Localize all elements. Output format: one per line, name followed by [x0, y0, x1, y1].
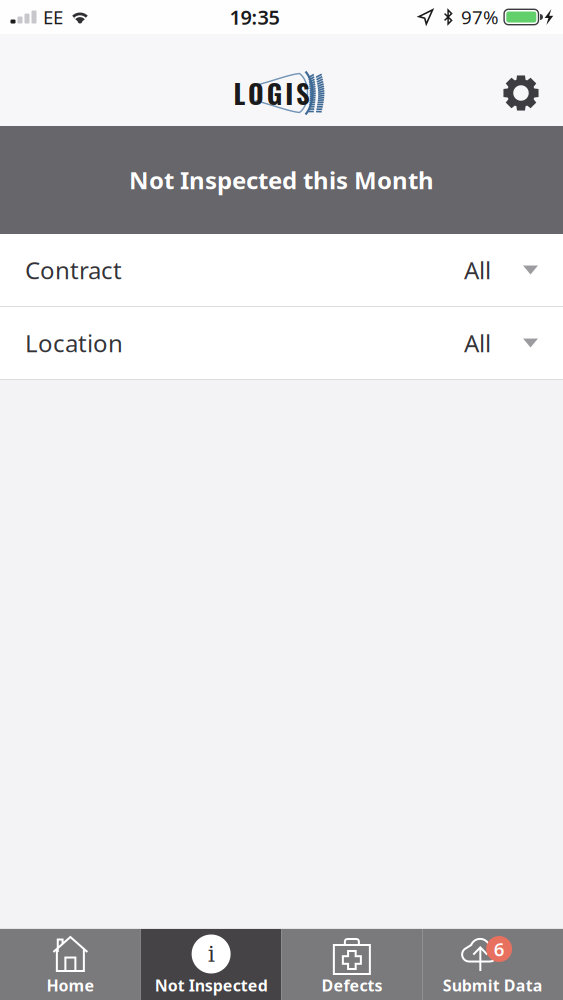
staticText: Defects [321, 975, 382, 996]
staticText: O [248, 73, 264, 113]
staticText: All [464, 327, 491, 359]
button[interactable]: 6 [422, 929, 563, 1000]
staticText: I [285, 73, 293, 113]
staticText: G [267, 73, 283, 113]
staticText: EE [43, 5, 63, 29]
button[interactable]: Location [0, 307, 563, 379]
staticText: 6 [494, 937, 505, 961]
button[interactable]: Contract [0, 234, 563, 306]
staticText: S [296, 73, 310, 113]
staticText: Not Inspected this Month [129, 164, 434, 196]
staticText: 19:35 [230, 4, 280, 30]
button[interactable]: Defects [281, 929, 422, 1000]
button[interactable]: Settings [503, 75, 563, 111]
staticText: Home [46, 975, 94, 996]
staticText: Location [25, 327, 123, 359]
staticText: i [208, 941, 215, 967]
button[interactable]: Home [0, 929, 141, 1000]
staticText: All [464, 254, 491, 286]
staticText: Not Inspected [155, 975, 268, 996]
staticText: 97% [461, 5, 499, 29]
staticText: L [233, 73, 245, 113]
staticText: Contract [25, 254, 122, 286]
button[interactable]: i [141, 929, 282, 1000]
staticText: Submit Data [443, 975, 543, 996]
